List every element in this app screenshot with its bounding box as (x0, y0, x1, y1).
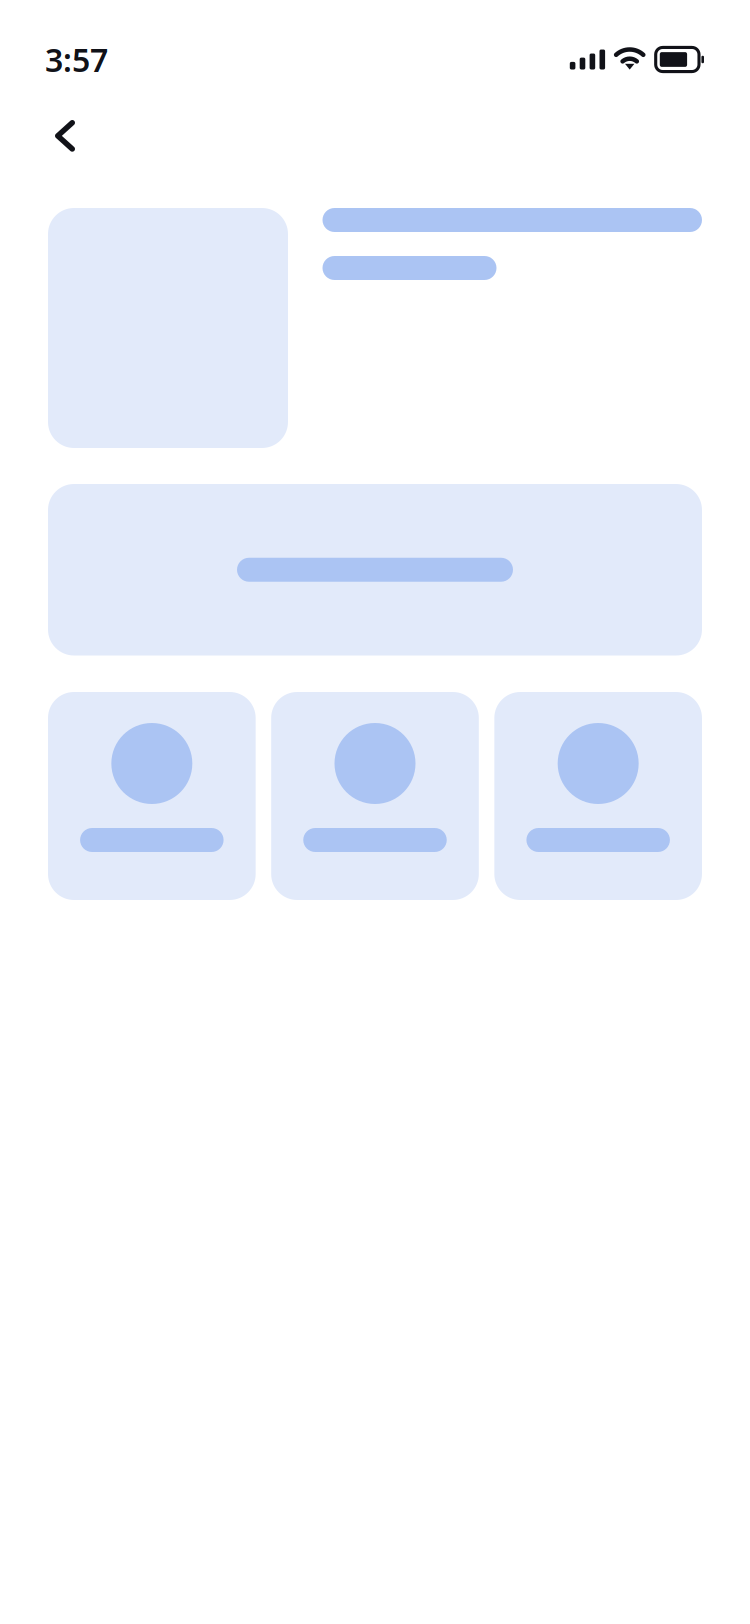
button[interactable]: Back (16, 96, 100, 176)
staticText: 3:57 (45, 38, 108, 81)
